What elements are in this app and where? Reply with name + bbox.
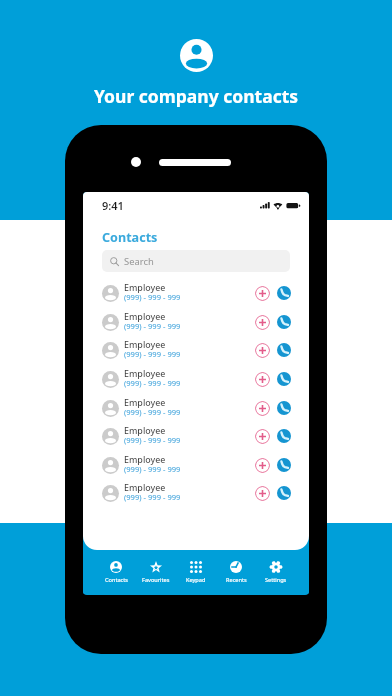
button[interactable]: Favourites [136,550,176,594]
staticText: Favourites [142,576,170,584]
staticText: (999) - 999 - 999 [124,349,181,359]
button[interactable]: Search [102,250,290,272]
staticText: (999) - 999 - 999 [124,292,181,302]
button[interactable]: Call [277,315,291,329]
button[interactable]: Employee [83,365,309,393]
staticText: Employee [124,424,166,436]
staticText: (999) - 999 - 999 [124,435,181,445]
button[interactable]: Contacts [96,550,136,594]
button[interactable]: Call [277,458,291,472]
button[interactable]: Add contact [255,372,270,387]
button[interactable]: Employee [83,422,309,450]
staticText: Employee [124,281,166,293]
button[interactable]: Add contact [255,458,270,473]
button[interactable]: Employee [83,279,309,307]
staticText: Employee [124,310,166,322]
staticText: (999) - 999 - 999 [124,492,181,502]
staticText: Employee [124,396,166,408]
staticText: Contacts [105,576,128,584]
staticText: Search [124,255,154,268]
button[interactable]: Recents [216,550,256,594]
button[interactable]: Call [277,486,291,500]
staticText: Your company contacts [94,84,299,108]
staticText: (999) - 999 - 999 [124,407,181,417]
button[interactable]: Employee [83,451,309,479]
button[interactable]: Employee [83,479,309,507]
staticText: Employee [124,453,166,465]
staticText: Employee [124,481,166,493]
button[interactable]: Add contact [255,401,270,416]
button[interactable]: Add contact [255,429,270,444]
button[interactable]: Employee [83,394,309,422]
staticText: (999) - 999 - 999 [124,378,181,388]
button[interactable]: Keypad [176,550,216,594]
button[interactable]: Call [277,372,291,386]
button[interactable]: Employee [83,308,309,336]
staticText: (999) - 999 - 999 [124,464,181,474]
staticText: Settings [265,576,287,584]
button[interactable]: Call [277,429,291,443]
button[interactable]: Employee [83,336,309,364]
button[interactable]: Add contact [255,486,270,501]
staticText: Contacts [102,229,158,246]
button[interactable]: Call [277,286,291,300]
button[interactable]: Add contact [255,343,270,358]
staticText: Recents [226,576,247,584]
staticText: Employee [124,338,166,350]
staticText: Employee [124,367,166,379]
button[interactable]: Add contact [255,286,270,301]
button[interactable]: Add contact [255,315,270,330]
staticText: 9:41 [102,198,124,213]
staticText: (999) - 999 - 999 [124,321,181,331]
button[interactable]: Settings [256,550,296,594]
staticText: Keypad [186,576,206,584]
button[interactable]: Call [277,343,291,357]
button[interactable]: Call [277,401,291,415]
